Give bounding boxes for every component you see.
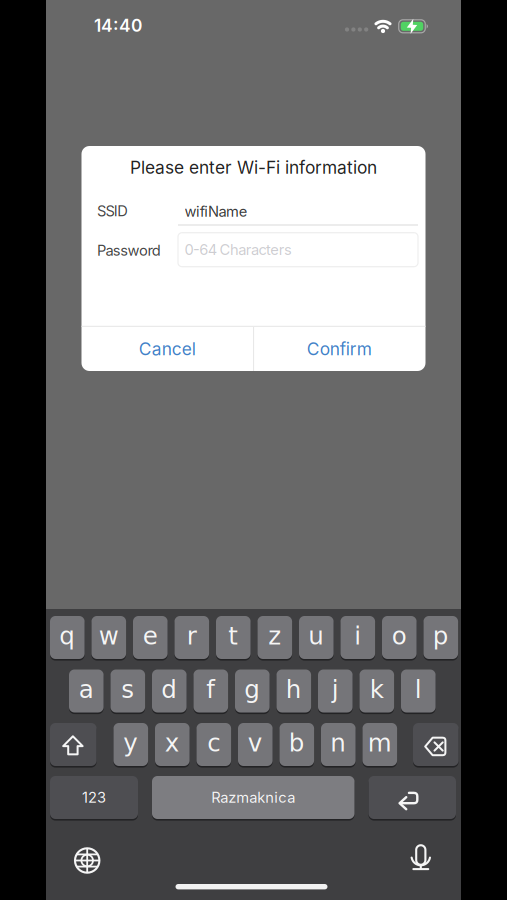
staticText: z bbox=[268, 622, 281, 650]
staticText: c bbox=[207, 729, 220, 757]
button[interactable]: g bbox=[235, 668, 270, 713]
button[interactable]: r bbox=[174, 615, 209, 660]
button[interactable]: q bbox=[50, 615, 85, 660]
button[interactable]: d bbox=[152, 668, 187, 713]
button[interactable]: i bbox=[340, 615, 375, 660]
button[interactable]: z bbox=[257, 615, 292, 660]
button[interactable]: l bbox=[401, 668, 436, 713]
staticText: v bbox=[248, 729, 263, 757]
staticText: g bbox=[244, 675, 260, 704]
staticText: 123 bbox=[82, 789, 106, 806]
staticText: k bbox=[370, 675, 384, 704]
staticText: w bbox=[99, 622, 119, 650]
staticText: a bbox=[79, 675, 94, 704]
button[interactable]: Razmaknica bbox=[152, 775, 354, 820]
button[interactable]: 0-64 Characters bbox=[178, 233, 418, 267]
button[interactable]: t bbox=[216, 615, 251, 660]
button[interactable]: Cancel bbox=[82, 327, 253, 371]
staticText: Password bbox=[97, 242, 161, 259]
button[interactable]: 123 bbox=[50, 775, 138, 820]
button[interactable]: Return bbox=[368, 775, 456, 820]
button[interactable]: v bbox=[238, 722, 273, 767]
staticText: Confirm bbox=[307, 339, 372, 359]
staticText: u bbox=[308, 622, 324, 650]
staticText: o bbox=[392, 622, 407, 650]
button[interactable]: h bbox=[276, 668, 311, 713]
button[interactable]: w bbox=[91, 615, 126, 660]
staticText: wifiName bbox=[184, 203, 248, 220]
staticText: e bbox=[143, 622, 158, 650]
button[interactable]: Dictation bbox=[401, 840, 441, 880]
button[interactable]: a bbox=[69, 668, 104, 713]
button[interactable]: Delete bbox=[413, 722, 459, 767]
button[interactable]: k bbox=[359, 668, 394, 713]
staticText: i bbox=[354, 622, 361, 650]
button[interactable]: m bbox=[362, 722, 397, 767]
button[interactable]: x bbox=[155, 722, 190, 767]
staticText: l bbox=[415, 675, 422, 704]
button[interactable]: Shift bbox=[50, 722, 97, 767]
staticText: s bbox=[121, 675, 134, 704]
staticText: 0-64 Characters bbox=[184, 241, 292, 258]
button[interactable]: Next keyboard bbox=[67, 840, 107, 880]
staticText: q bbox=[59, 622, 75, 650]
button[interactable]: wifiName bbox=[178, 192, 418, 226]
button[interactable]: c bbox=[196, 722, 231, 767]
staticText: d bbox=[161, 675, 177, 704]
button[interactable]: y bbox=[113, 722, 148, 767]
button[interactable]: b bbox=[279, 722, 314, 767]
staticText: h bbox=[286, 675, 302, 704]
button[interactable]: s bbox=[110, 668, 145, 713]
staticText: m bbox=[368, 729, 392, 757]
button[interactable]: o bbox=[382, 615, 417, 660]
button[interactable]: j bbox=[318, 668, 353, 713]
button[interactable]: f bbox=[193, 668, 228, 713]
button[interactable]: n bbox=[321, 722, 356, 767]
staticText: Cancel bbox=[139, 339, 196, 359]
button[interactable]: u bbox=[299, 615, 334, 660]
staticText: SSID bbox=[97, 202, 128, 220]
staticText: y bbox=[123, 729, 138, 757]
staticText: p bbox=[433, 622, 449, 650]
staticText: f bbox=[206, 675, 215, 704]
staticText: j bbox=[332, 675, 339, 704]
button[interactable]: p bbox=[423, 615, 458, 660]
staticText: Please enter Wi-Fi information bbox=[130, 157, 377, 178]
staticText: t bbox=[228, 622, 238, 650]
staticText: Razmaknica bbox=[211, 789, 295, 806]
staticText: n bbox=[330, 729, 346, 757]
staticText: r bbox=[187, 622, 197, 650]
staticText: x bbox=[165, 729, 180, 757]
staticText: 14:40 bbox=[94, 15, 142, 36]
staticText: b bbox=[289, 729, 305, 757]
button[interactable]: Confirm bbox=[254, 327, 425, 371]
button[interactable]: e bbox=[133, 615, 168, 660]
